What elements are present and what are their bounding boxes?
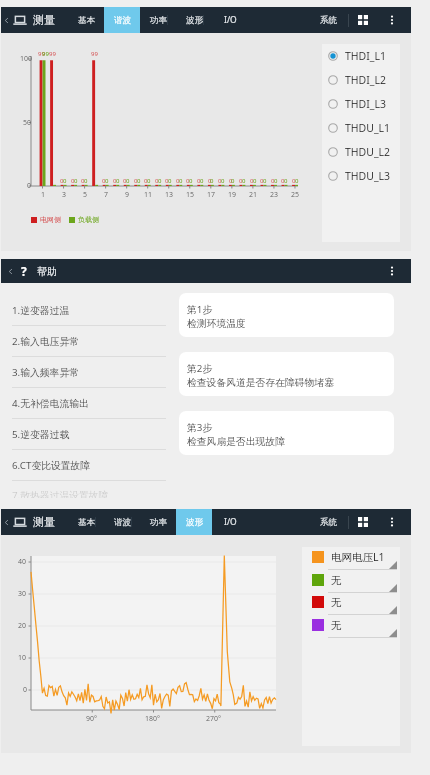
- staticText: 0: [147, 177, 151, 185]
- staticText: 第3步: [187, 421, 213, 434]
- button[interactable]: 2.输入电压异常: [12, 326, 166, 357]
- staticText: THDU_L2: [345, 145, 391, 159]
- staticText: 0: [168, 177, 172, 185]
- button[interactable]: THDI_L2: [322, 68, 400, 92]
- button[interactable]: More options: [377, 7, 411, 33]
- staticText: 0: [281, 177, 285, 185]
- staticText: 检查设备风道是否存在障碍物堵塞: [187, 377, 334, 389]
- button[interactable]: 第3步: [179, 411, 394, 455]
- button[interactable]: 电网电压L1: [302, 547, 400, 570]
- button[interactable]: THDU_L1: [322, 116, 400, 140]
- staticText: 测量: [33, 13, 55, 27]
- staticText: 7: [104, 190, 109, 200]
- staticText: 0: [84, 177, 88, 185]
- staticText: 帮助: [37, 265, 57, 278]
- staticText: 99: [91, 50, 98, 58]
- staticText: 1: [41, 190, 46, 200]
- button[interactable]: 7.散热器过温设置故障: [12, 481, 166, 498]
- staticText: 0: [284, 177, 288, 185]
- staticText: 0: [27, 181, 32, 191]
- staticText: 20: [18, 621, 27, 631]
- staticText: 7.散热器过温设置故障: [12, 489, 109, 498]
- button[interactable]: 系统: [309, 7, 348, 33]
- staticText: 5.逆变器过载: [12, 428, 70, 441]
- staticText: 0: [105, 177, 109, 185]
- staticText: 功率: [150, 15, 167, 26]
- button[interactable]: 第1步: [179, 293, 394, 337]
- button[interactable]: 功率: [140, 7, 176, 33]
- staticText: 0: [200, 177, 204, 185]
- staticText: 0: [229, 177, 233, 185]
- staticText: 25: [291, 190, 300, 200]
- staticText: 19: [228, 190, 237, 200]
- staticText: 0: [102, 177, 106, 185]
- button[interactable]: 波形: [176, 7, 212, 33]
- staticText: 50: [23, 118, 32, 128]
- button[interactable]: 功率: [140, 509, 176, 535]
- button[interactable]: 波形: [176, 509, 212, 535]
- staticText: 0: [210, 177, 214, 185]
- staticText: 15: [186, 190, 195, 200]
- staticText: 谐波: [114, 15, 131, 26]
- button[interactable]: 基本: [68, 509, 104, 535]
- staticText: 5: [83, 190, 88, 200]
- staticText: 0: [126, 177, 130, 185]
- button[interactable]: Apps: [349, 509, 377, 535]
- button[interactable]: 无: [302, 615, 400, 638]
- staticText: 测量: [33, 515, 55, 529]
- button[interactable]: 谐波: [104, 7, 140, 33]
- staticText: 6.CT变比设置故障: [12, 459, 91, 472]
- staticText: 2.输入电压异常: [12, 335, 80, 348]
- staticText: 21: [249, 190, 258, 200]
- button[interactable]: 系统: [309, 509, 348, 535]
- staticText: 0: [165, 177, 169, 185]
- button[interactable]: 第2步: [179, 352, 394, 396]
- other: Back: [3, 519, 10, 526]
- staticText: 功率: [150, 517, 167, 528]
- button[interactable]: 无: [302, 592, 400, 615]
- staticText: 0: [239, 177, 243, 185]
- button[interactable]: THDU_L2: [322, 140, 400, 164]
- staticText: 11: [144, 190, 153, 200]
- button[interactable]: 基本: [68, 7, 104, 33]
- staticText: 90°: [86, 714, 98, 724]
- button[interactable]: 4.无补偿电流输出: [12, 388, 166, 419]
- staticText: 10: [18, 653, 27, 663]
- button[interactable]: More options: [377, 259, 411, 283]
- button[interactable]: THDI_L1: [322, 44, 400, 68]
- staticText: 99: [42, 50, 49, 58]
- staticText: 基本: [78, 517, 95, 528]
- staticText: 270°: [206, 714, 222, 724]
- staticText: 0: [250, 177, 254, 185]
- button[interactable]: 1.逆变器过温: [12, 295, 166, 326]
- staticText: 0: [123, 177, 127, 185]
- staticText: 谐波: [114, 517, 131, 528]
- staticText: 99: [49, 50, 56, 58]
- staticText: 0: [274, 177, 278, 185]
- staticText: 无: [331, 574, 342, 587]
- staticText: 0: [189, 177, 193, 185]
- button[interactable]: I/O: [212, 7, 248, 33]
- staticText: 电网电压L1: [331, 550, 385, 564]
- staticText: 100: [20, 54, 33, 64]
- staticText: 0: [263, 177, 267, 185]
- button[interactable]: 无: [302, 570, 400, 593]
- staticText: THDI_L1: [345, 49, 387, 63]
- button[interactable]: 6.CT变比设置故障: [12, 450, 166, 481]
- button[interactable]: THDU_L3: [322, 164, 400, 188]
- staticText: THDU_L1: [345, 121, 391, 135]
- staticText: 0: [218, 177, 222, 185]
- button[interactable]: I/O: [212, 509, 248, 535]
- staticText: 检查风扇是否出现故障: [187, 436, 285, 448]
- staticText: 0: [23, 685, 28, 695]
- button[interactable]: 谐波: [104, 509, 140, 535]
- button[interactable]: Apps: [349, 7, 377, 33]
- staticText: 0: [74, 177, 78, 185]
- button[interactable]: 3.输入频率异常: [12, 357, 166, 388]
- staticText: 0: [260, 177, 264, 185]
- button[interactable]: 5.逆变器过载: [12, 419, 166, 450]
- button[interactable]: THDI_L3: [322, 92, 400, 116]
- button[interactable]: More options: [377, 509, 411, 535]
- staticText: 0: [81, 177, 85, 185]
- staticText: 0: [176, 177, 180, 185]
